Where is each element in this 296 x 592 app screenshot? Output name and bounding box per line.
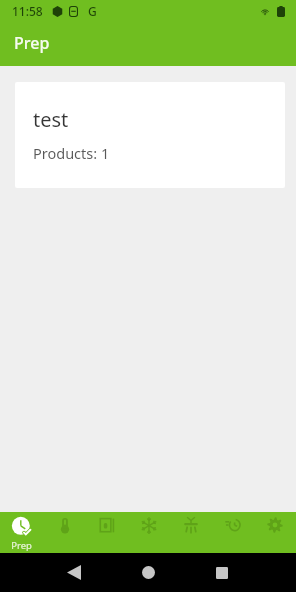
button[interactable]: Freeze	[128, 512, 170, 553]
staticText: G	[88, 3, 97, 19]
staticText: Prep	[11, 539, 32, 552]
button[interactable]: test	[15, 82, 285, 188]
button[interactable]: Home	[111, 553, 185, 592]
button[interactable]: Settings	[254, 512, 296, 553]
button[interactable]: Clean	[170, 512, 212, 553]
staticText: test	[33, 106, 69, 133]
button[interactable]: Cook	[43, 512, 86, 553]
button[interactable]: Prep	[0, 512, 43, 553]
staticText: Products: 1	[33, 143, 110, 163]
staticText: Prep	[14, 32, 50, 54]
staticText: 11:58	[12, 3, 43, 19]
button[interactable]: Back	[37, 553, 111, 592]
button[interactable]: History	[212, 512, 254, 553]
button[interactable]: Recents	[185, 553, 259, 592]
button[interactable]: Chill	[86, 512, 128, 553]
